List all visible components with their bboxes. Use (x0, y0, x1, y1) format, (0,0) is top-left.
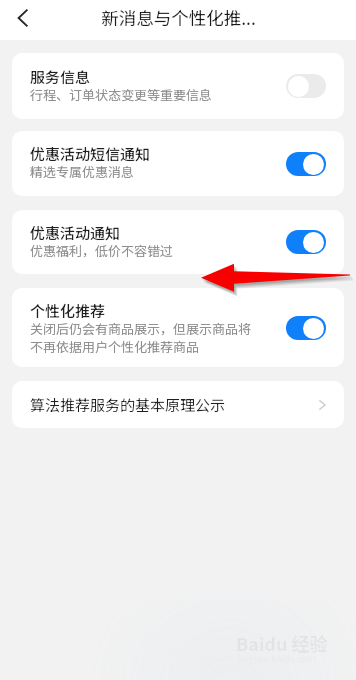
staticText: 关闭后仍会有商品展示，但展示商品将 (30, 319, 252, 338)
staticText: 个性化推荐 (30, 300, 106, 322)
button[interactable]: 优惠活动短信通知 (12, 131, 344, 196)
button[interactable]: Switch on (286, 230, 326, 254)
staticText: 优惠福利，低价不容错过 (30, 241, 174, 260)
staticText: 优惠活动通知 (30, 222, 121, 244)
button[interactable]: 个性化推荐 (12, 288, 344, 367)
button[interactable]: Switch on (286, 316, 326, 340)
staticText: 不再依据用户个性化推荐商品 (30, 337, 200, 356)
button[interactable]: Switch on (286, 152, 326, 176)
staticText: Baidu 经验 (236, 630, 328, 656)
staticText: 行程、订单状态变更等重要信息 (30, 85, 213, 104)
button[interactable]: 服务信息 (12, 53, 344, 119)
button[interactable]: 算法推荐服务的基本原理公示 (12, 381, 344, 428)
button[interactable]: Switch off (286, 74, 326, 98)
staticText: 服务信息 (30, 66, 91, 88)
staticText: 精选专属优惠消息 (30, 162, 135, 181)
staticText: 算法推荐服务的基本原理公示 (30, 394, 312, 416)
staticText: 新消息与个性化推... (101, 5, 256, 30)
button[interactable]: 优惠活动通知 (12, 210, 344, 274)
staticText: 优惠活动短信通知 (30, 143, 151, 165)
button[interactable]: Back (0, 0, 44, 40)
